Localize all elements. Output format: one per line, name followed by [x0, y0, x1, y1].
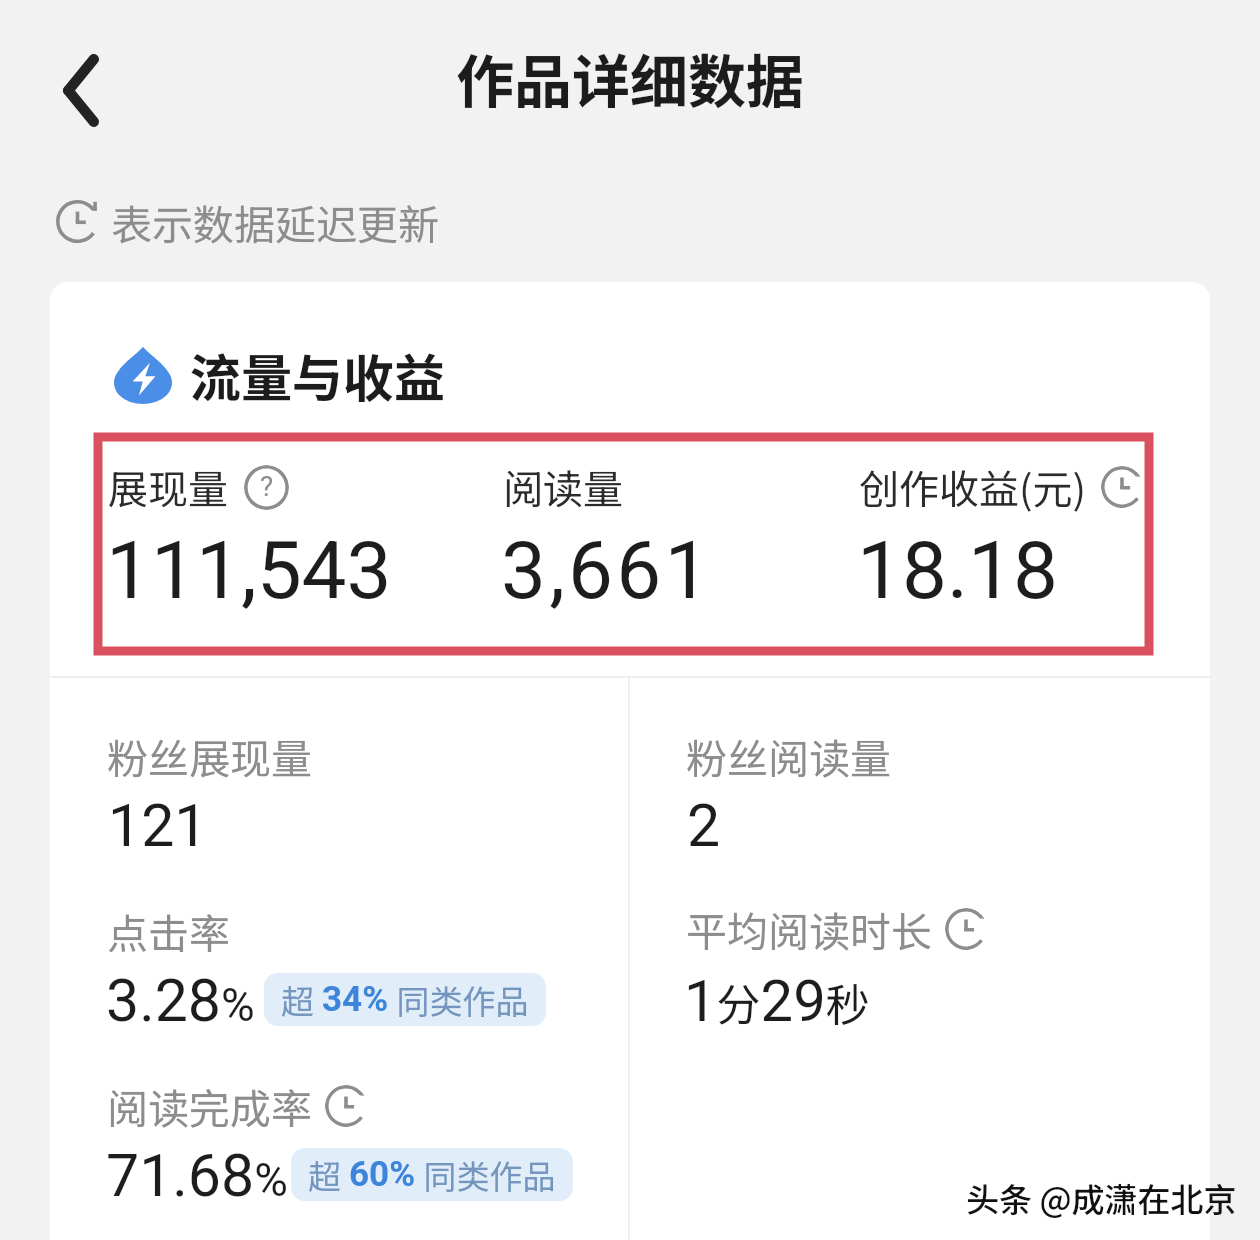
button[interactable] [98, 450, 478, 620]
button[interactable] [674, 712, 1184, 872]
staticText: 表示数据延迟更新 [111, 192, 439, 251]
button[interactable] [95, 712, 605, 872]
staticText: 34% [322, 979, 389, 1020]
button[interactable] [674, 885, 1184, 1045]
staticText: 3,661 [501, 524, 713, 618]
button[interactable] [849, 450, 1159, 620]
staticText: 18.18 [857, 524, 1058, 618]
staticText: 111,543 [106, 524, 392, 618]
staticText: 同类作品 [416, 1151, 556, 1199]
staticText: 2 [687, 791, 721, 860]
staticText: 创作收益(元) [859, 458, 1087, 516]
staticText: 粉丝展现量 [107, 726, 312, 785]
button[interactable]: 超 [264, 973, 546, 1026]
staticText: 1分29秒 [684, 967, 870, 1035]
button[interactable] [95, 1062, 605, 1222]
staticText: 阅读量 [503, 458, 623, 516]
staticText: 平均阅读时长 [686, 899, 932, 958]
staticText: 流量与收益 [190, 338, 446, 412]
staticText: 粉丝阅读量 [686, 726, 891, 785]
staticText: 3.28% [106, 966, 255, 1035]
button[interactable]: Data is delayed [325, 1085, 367, 1127]
button[interactable] [95, 887, 605, 1047]
staticText: 点击率 [107, 901, 230, 960]
staticText: 超 [281, 976, 322, 1024]
button[interactable]: Data is delayed [945, 908, 987, 950]
staticText: 121 [108, 791, 208, 860]
staticText: 60% [349, 1154, 416, 1195]
staticText: ? [260, 470, 274, 503]
staticText: 超 [308, 1151, 349, 1199]
staticText: 展现量 [108, 458, 228, 516]
staticText: 头条 @成潇在北京 [966, 1174, 1237, 1222]
button[interactable]: 流量与收益 [114, 338, 446, 412]
staticText: 阅读完成率 [107, 1076, 312, 1135]
staticText: 71.68% [106, 1141, 288, 1210]
staticText: 同类作品 [389, 976, 529, 1024]
button[interactable]: 超 [291, 1148, 573, 1201]
button[interactable] [493, 450, 833, 620]
staticText: 作品详细数据 [456, 36, 805, 120]
button[interactable]: 表示数据延迟更新 [56, 192, 439, 251]
button[interactable]: Data is delayed [1101, 466, 1143, 508]
button[interactable]: Back [38, 44, 124, 136]
button[interactable]: What is impressions [244, 465, 289, 510]
